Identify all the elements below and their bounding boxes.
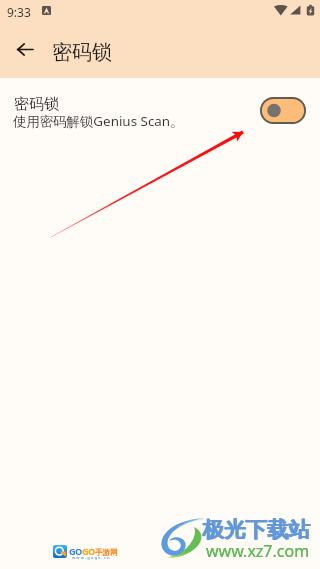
staticText: 极光下载站 xyxy=(203,516,311,543)
staticText: 使用密码解锁Genius Scan。 xyxy=(13,112,184,130)
button[interactable]: 密码锁 xyxy=(0,86,320,134)
staticText: 极光下载站 xyxy=(202,516,310,543)
staticText: www.gogo.cn xyxy=(72,555,111,560)
staticText: www.xz7.com xyxy=(206,540,310,562)
button[interactable]: Back xyxy=(4,29,45,70)
staticText: 手游网 xyxy=(95,548,118,558)
staticText: www.xz7.com xyxy=(206,540,310,562)
staticText: GO xyxy=(82,545,95,558)
staticText: GO xyxy=(69,545,82,558)
button[interactable]: Toggle password lock xyxy=(260,97,306,124)
staticText: 密码锁 xyxy=(14,95,59,114)
staticText: 9:33 xyxy=(7,4,31,20)
staticText: 密码锁 xyxy=(52,40,112,65)
